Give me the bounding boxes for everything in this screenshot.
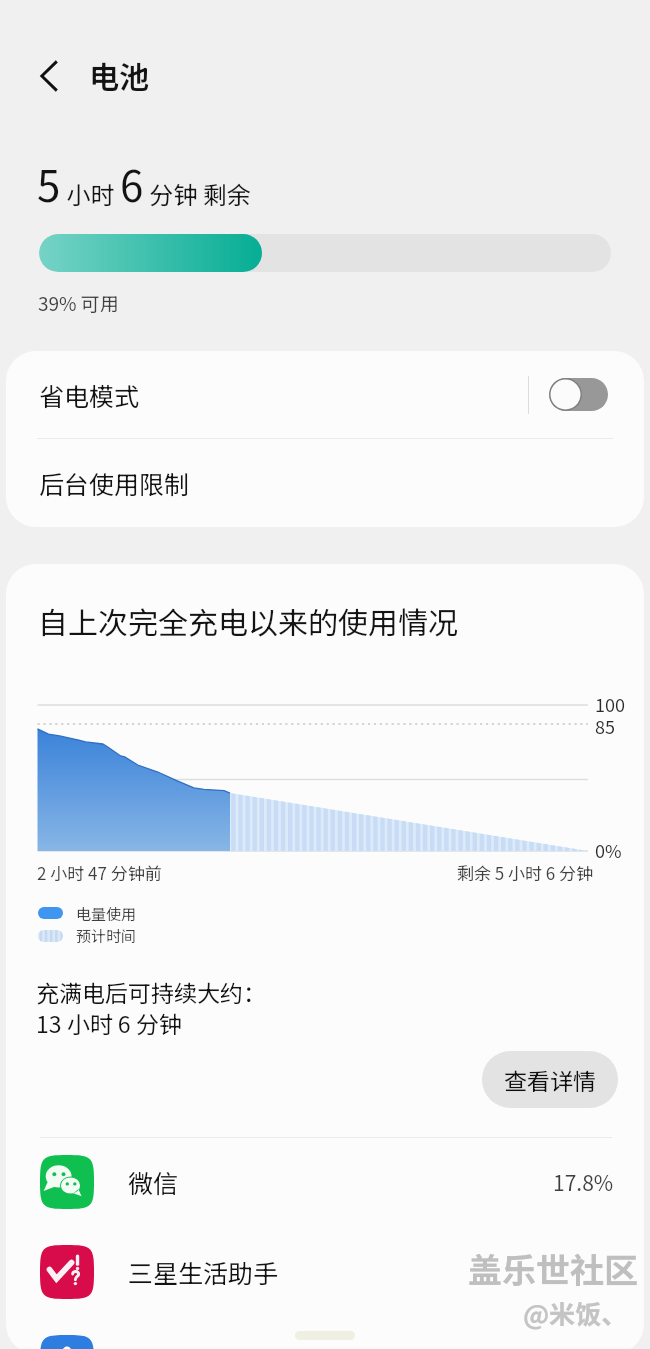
staticText: 电池 [89, 53, 149, 96]
button[interactable]: 查看详情 [482, 1051, 618, 1108]
staticText: 100 [595, 691, 625, 717]
staticText: 0% [595, 837, 622, 863]
staticText: 分钟 剩余 [144, 176, 251, 211]
staticText: 小时 [61, 176, 120, 211]
staticText: 省电模式 [39, 377, 528, 413]
staticText: 查看详情 [504, 1063, 596, 1096]
staticText: 电量使用 [76, 903, 137, 925]
staticText: 盖乐世社区 [468, 1244, 638, 1293]
staticText: 充满电后可持续大约： [36, 975, 266, 1008]
staticText: 17.8% [553, 1167, 614, 1197]
staticText: 39% 可用 [38, 289, 119, 317]
staticText: 剩余 5 小时 6 分钟 [457, 860, 594, 885]
staticText: 5 [37, 153, 61, 214]
staticText: 微信 [128, 1164, 179, 1200]
staticText: 6 [120, 153, 144, 214]
staticText: 自上次完全充电以来的使用情况 [38, 599, 458, 642]
staticText: 后台使用限制 [39, 465, 190, 501]
button[interactable]: Back [24, 50, 76, 102]
staticText: 三星生活助手 [128, 1254, 279, 1290]
staticText: 预计时间 [76, 925, 137, 947]
button[interactable]: 省电模式 [6, 351, 644, 438]
button[interactable]: 后台使用限制 [6, 439, 644, 527]
button[interactable]: 微信 [6, 1138, 644, 1226]
button[interactable]: 三星生活助手 [6, 1228, 644, 1316]
button[interactable] [6, 1318, 644, 1349]
staticText: 2 小时 47 分钟前 [37, 860, 162, 885]
staticText: 85 [595, 713, 615, 739]
button[interactable]: Power saving mode toggle [549, 378, 608, 411]
staticText: @米饭、 [523, 1294, 628, 1332]
staticText: 13 小时 6 分钟 [36, 1006, 182, 1039]
